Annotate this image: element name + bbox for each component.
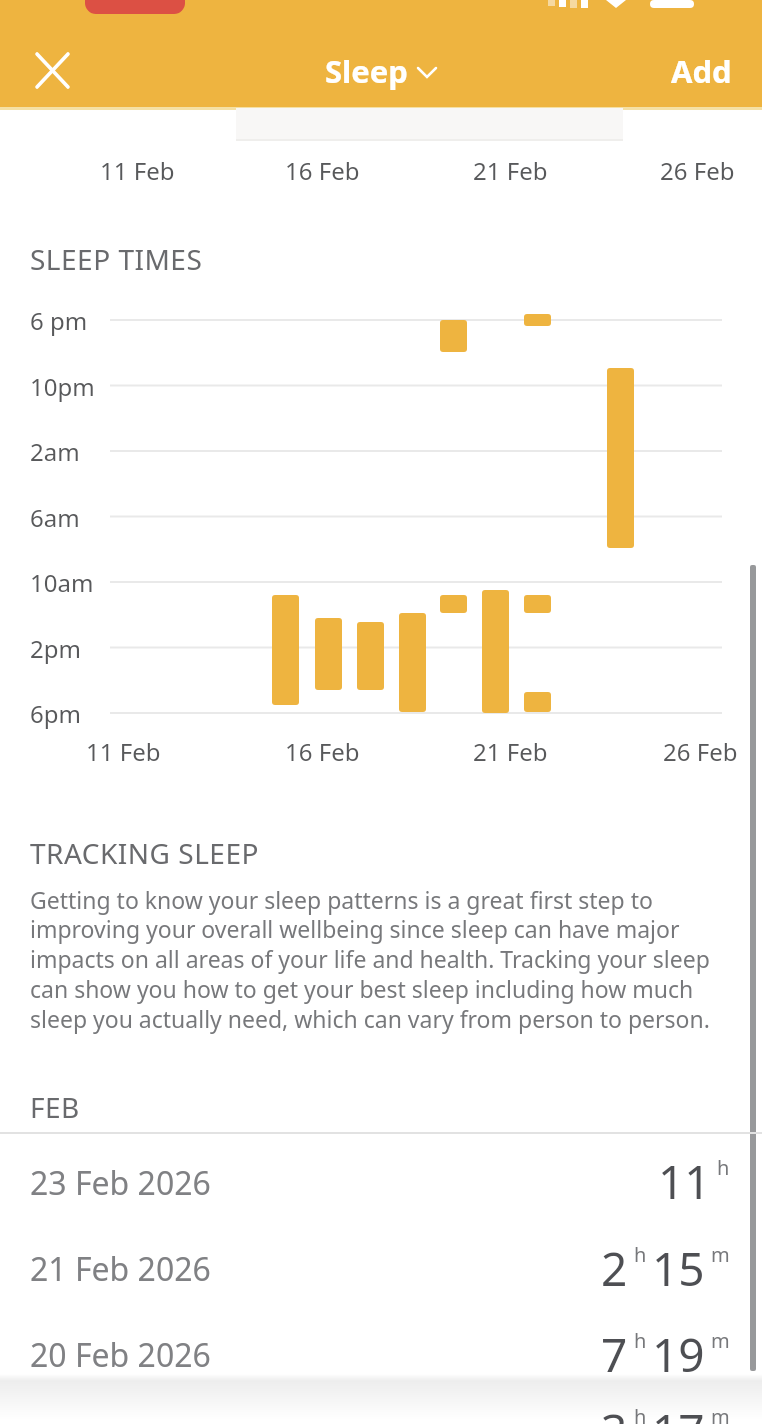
button[interactable] <box>26 44 78 96</box>
staticText: 6am <box>30 501 80 534</box>
staticText: 16 Feb <box>285 154 360 187</box>
staticText: 23 Feb 2026 <box>30 1161 211 1205</box>
staticText: Add <box>671 50 732 92</box>
staticText: 16 Feb <box>285 735 360 768</box>
staticText: 7 <box>601 1323 628 1386</box>
staticText: 2am <box>30 435 80 468</box>
staticText: FEB <box>30 1088 80 1126</box>
staticText: 15 <box>652 1237 705 1300</box>
staticText: 2pm <box>30 632 81 665</box>
staticText: 11 Feb <box>86 735 161 768</box>
staticText: 6pm <box>30 697 81 730</box>
staticText: h <box>634 1403 647 1424</box>
staticText: 17 <box>652 1399 705 1424</box>
button[interactable]: 23 Feb 2026 <box>0 1140 762 1226</box>
staticText: m <box>711 1241 730 1268</box>
staticText: h <box>717 1154 730 1181</box>
staticText: 11 Feb <box>100 154 175 187</box>
button[interactable]: Add <box>612 48 732 94</box>
staticText: 26 Feb <box>663 735 738 768</box>
staticText: 20 Feb 2026 <box>30 1333 211 1377</box>
staticText: m <box>711 1327 730 1354</box>
staticText: 21 Feb <box>473 735 548 768</box>
staticText: 3 <box>601 1399 628 1424</box>
button[interactable]: Sleep <box>281 48 481 94</box>
staticText: 2 <box>601 1237 628 1300</box>
staticText: SLEEP TIMES <box>30 240 203 278</box>
staticText: 11 <box>658 1150 711 1213</box>
staticText: Getting to know your sleep patterns is a… <box>30 884 730 1035</box>
button[interactable]: 20 Feb 2026 <box>0 1312 762 1398</box>
staticText: h <box>634 1241 647 1268</box>
staticText: 10pm <box>30 370 95 403</box>
staticText: 26 Feb <box>660 154 735 187</box>
button[interactable]: 21 Feb 2026 <box>0 1226 762 1312</box>
staticText: 21 Feb 2026 <box>30 1247 211 1291</box>
staticText: TRACKING SLEEP <box>30 834 259 872</box>
staticText: h <box>634 1327 647 1354</box>
staticText: Sleep <box>325 50 408 92</box>
staticText: 21 Feb <box>473 154 548 187</box>
staticText: 6 pm <box>30 304 88 337</box>
staticText: 19 <box>652 1323 705 1386</box>
staticText: m <box>711 1403 730 1424</box>
staticText: 10am <box>30 566 94 599</box>
